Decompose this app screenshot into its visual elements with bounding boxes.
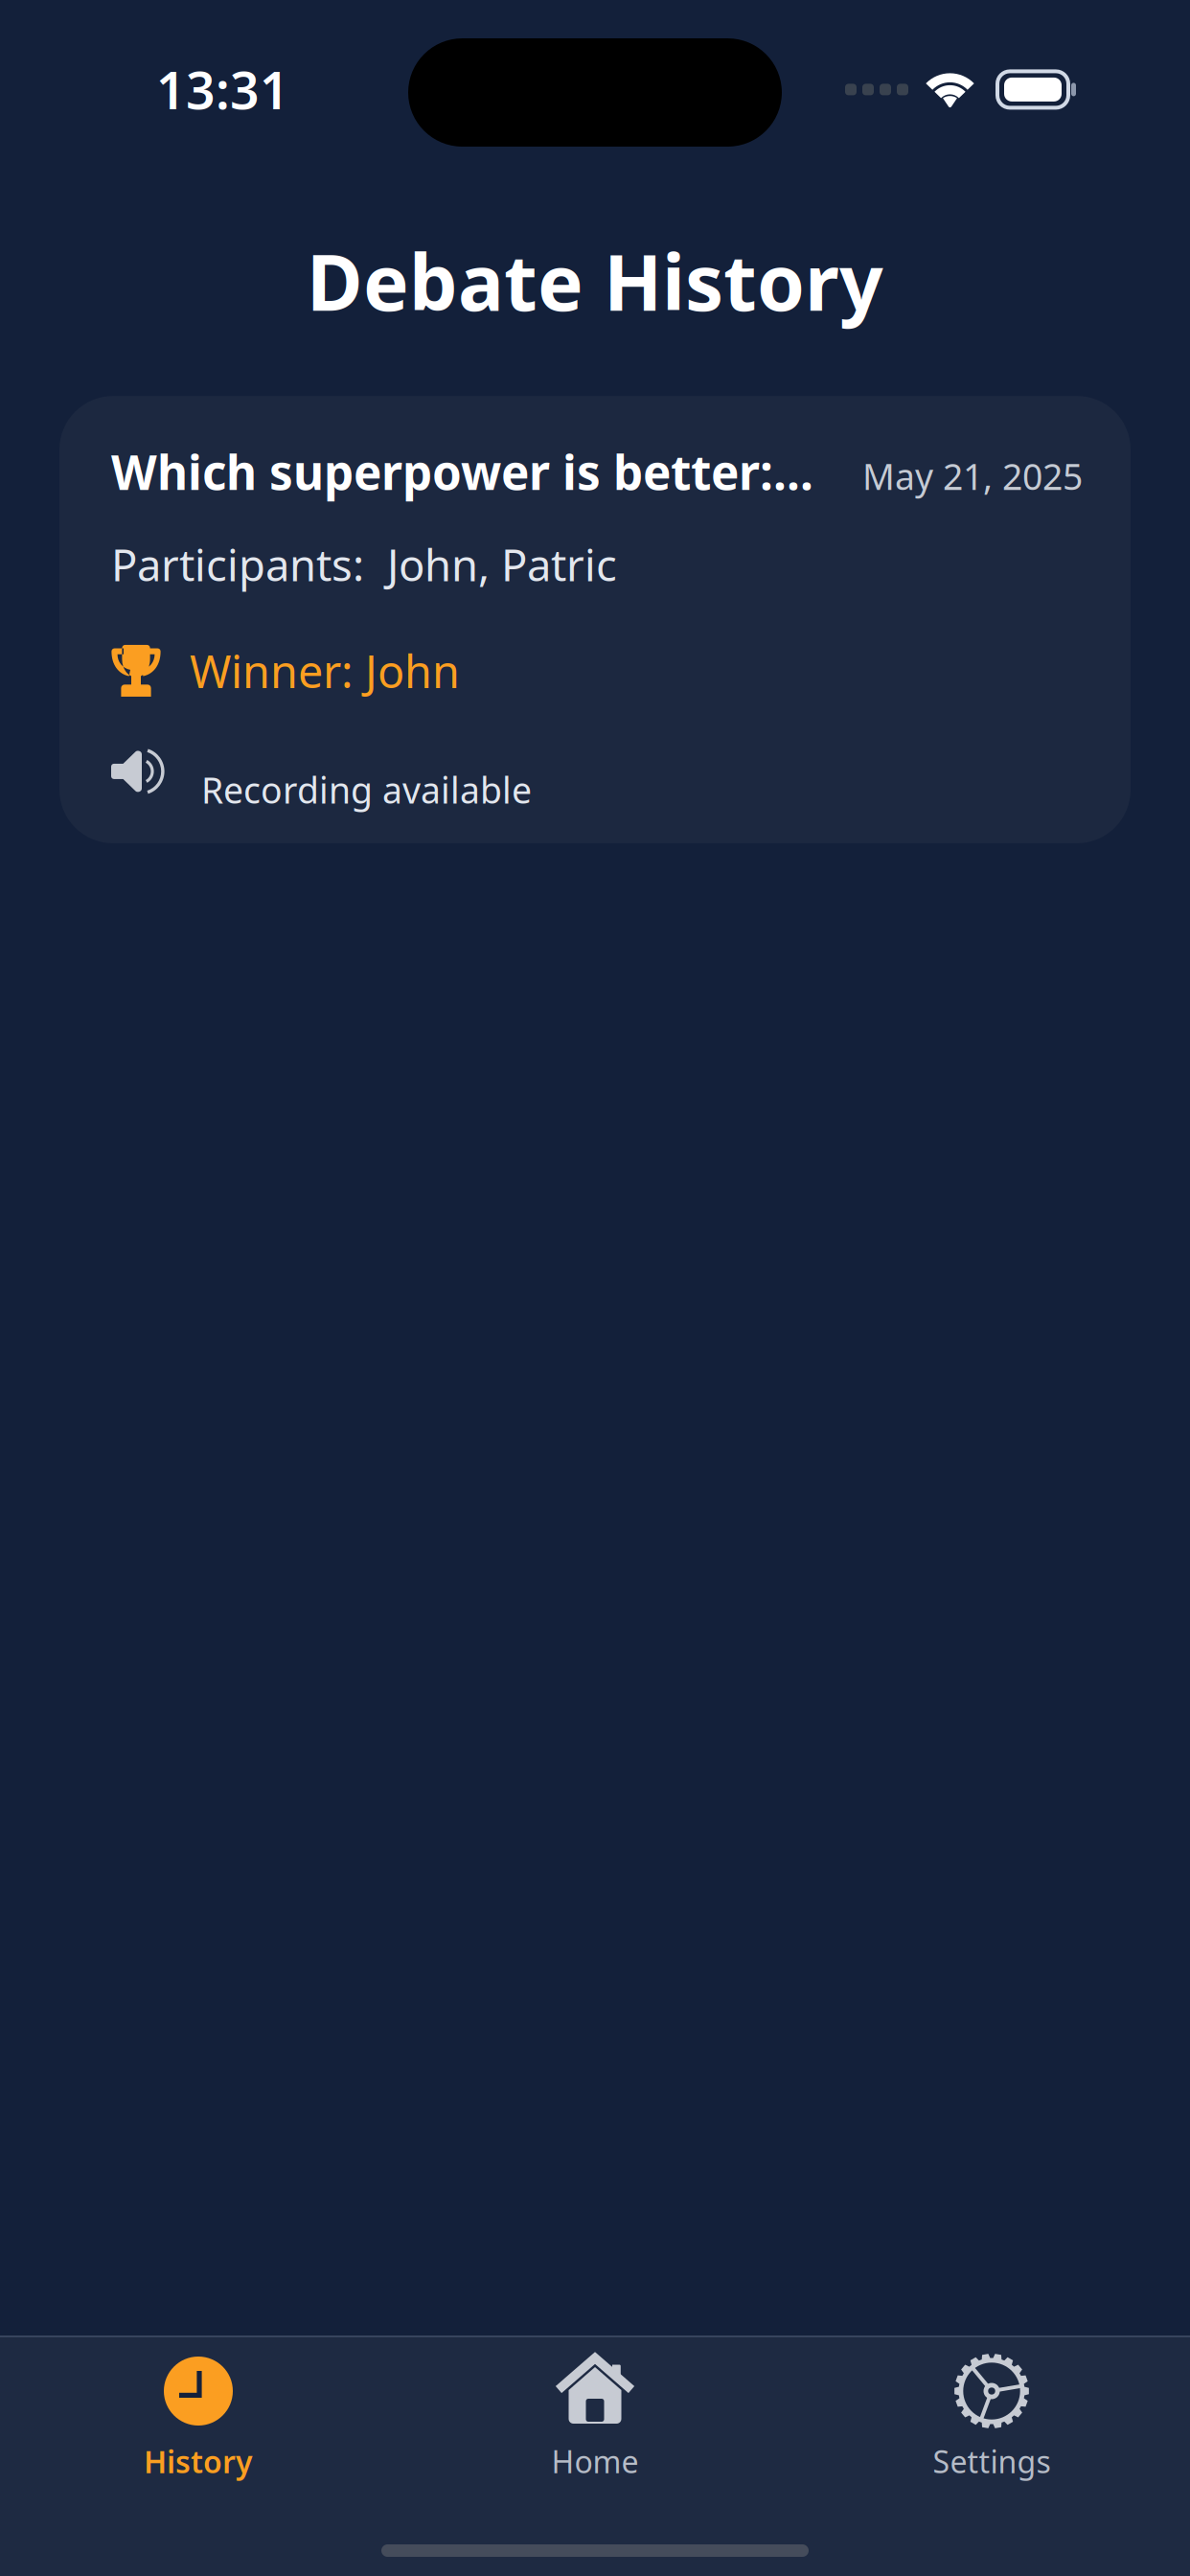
button[interactable]: Which superpower is better:... — [59, 396, 1131, 843]
staticText: 13:31 — [156, 56, 289, 123]
staticText: Which superpower is better:... — [111, 440, 813, 503]
staticText: Settings — [933, 2441, 1051, 2482]
button[interactable]: Home — [397, 2337, 793, 2493]
staticText: History — [144, 2441, 253, 2482]
button[interactable]: Settings — [793, 2337, 1190, 2493]
staticText: Participants: John, Patric — [111, 535, 617, 593]
staticText: Home — [551, 2441, 639, 2482]
staticText: Recording available — [201, 766, 532, 813]
staticText: Debate History — [307, 230, 883, 332]
staticText: Winner: John — [190, 641, 460, 700]
staticText: May 21, 2025 — [862, 452, 1083, 500]
button[interactable]: History — [0, 2337, 397, 2493]
